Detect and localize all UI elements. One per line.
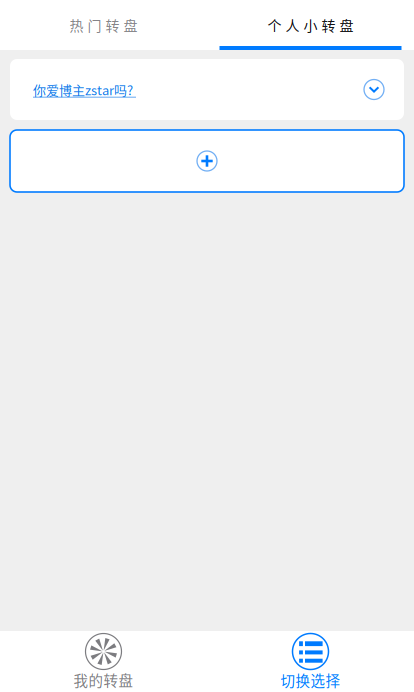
button[interactable]: 我的转盘 xyxy=(0,631,207,692)
button[interactable] xyxy=(10,130,404,192)
staticText: 我的转盘 xyxy=(73,669,133,690)
staticText: 切换选择 xyxy=(280,669,340,690)
button[interactable]: 你爱博主zstar吗? xyxy=(10,59,404,120)
staticText: 热 门 转 盘 xyxy=(69,15,137,35)
button[interactable]: 切换选择 xyxy=(207,631,414,692)
button[interactable]: 个 人 小 转 盘 xyxy=(207,0,414,50)
staticText: 你爱博主zstar吗? xyxy=(33,80,136,99)
button[interactable]: 热 门 转 盘 xyxy=(0,0,207,50)
staticText: 个 人 小 转 盘 xyxy=(267,15,353,35)
